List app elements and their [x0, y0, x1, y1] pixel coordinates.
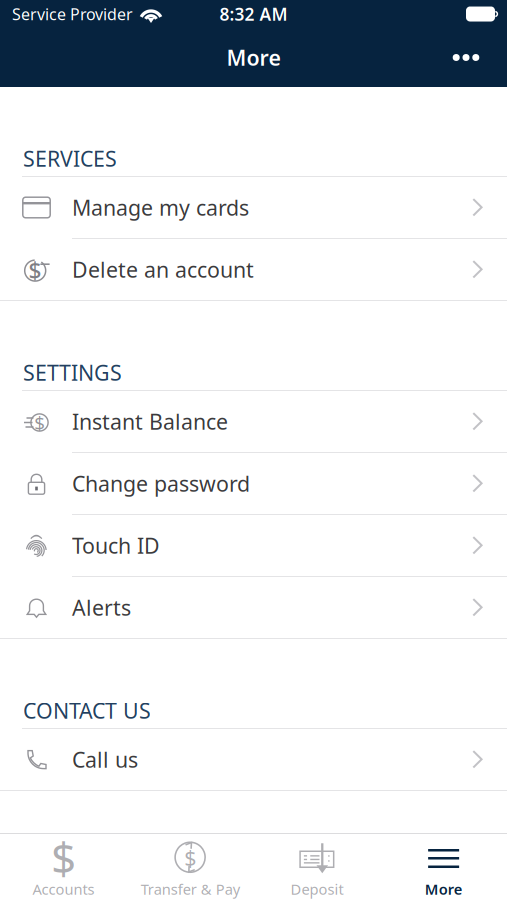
staticText: Service Provider — [12, 3, 133, 25]
staticText: Transfer & Pay — [141, 879, 240, 899]
button[interactable]: More — [380, 834, 507, 900]
staticText: Change password — [72, 469, 250, 498]
staticText: $ — [51, 828, 76, 886]
staticText: $ — [29, 255, 42, 285]
button[interactable]: Alerts — [0, 577, 507, 638]
staticText: $ — [184, 844, 196, 872]
button[interactable]: Call us — [0, 729, 507, 790]
button[interactable]: Manage my cards — [0, 177, 507, 238]
staticText: More — [425, 879, 463, 899]
staticText: Delete an account — [72, 255, 254, 284]
button[interactable]: Touch ID — [0, 515, 507, 576]
staticText: Manage my cards — [72, 193, 249, 222]
staticText: $ — [34, 410, 45, 435]
staticText: Alerts — [72, 593, 131, 622]
staticText: Touch ID — [72, 531, 160, 560]
staticText: CONTACT US — [23, 696, 151, 725]
staticText: More — [226, 43, 280, 72]
button[interactable]: $ — [0, 834, 127, 900]
staticText: Deposit — [290, 879, 343, 899]
staticText: 8:32 AM — [219, 2, 287, 25]
staticText: SERVICES — [23, 144, 117, 173]
button[interactable]: More options — [439, 32, 493, 82]
staticText: Call us — [72, 745, 138, 774]
button[interactable]: $ — [0, 239, 507, 300]
staticText: Accounts — [32, 879, 94, 899]
staticText: Instant Balance — [72, 407, 228, 436]
button[interactable]: Deposit — [253, 834, 380, 900]
staticText: SETTINGS — [23, 358, 122, 387]
button[interactable]: $ — [127, 834, 254, 900]
button[interactable]: $ — [0, 391, 507, 452]
button[interactable]: Change password — [0, 453, 507, 514]
